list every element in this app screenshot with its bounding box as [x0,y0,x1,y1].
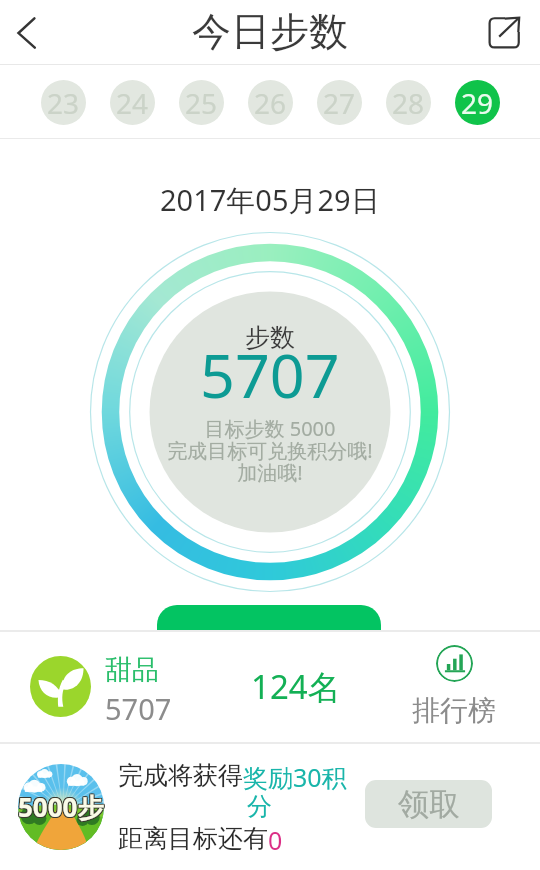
staticText: 距离目标还有 [118,823,268,854]
staticText: 步数 [245,322,295,353]
button[interactable]: 排行榜 [404,645,504,728]
button[interactable]: 23 [41,80,86,125]
button[interactable]: 28 [386,80,431,125]
staticText: 24 [116,84,149,122]
button[interactable]: 25 [179,80,224,125]
staticText: 甜品 [105,653,159,687]
staticText: 5000步 [19,789,105,825]
staticText: 奖励30积 [243,760,347,794]
button[interactable]: Share [478,6,532,60]
staticText: 5707 [200,333,340,416]
staticText: 5000步 [18,789,104,825]
staticText: 23 [47,84,80,122]
staticText: 5000步 [19,790,105,826]
staticText: 0 [268,823,283,857]
button[interactable] [30,656,91,717]
staticText: 2017年05月29日 [160,180,380,220]
staticText: 29 [461,84,494,122]
staticText: 5000步 [19,788,105,824]
staticText: 5000步 [17,788,103,824]
staticText: 25 [185,84,218,122]
staticText: 分 [247,791,272,822]
button[interactable]: 29 [455,80,500,125]
button[interactable]: 26 [248,80,293,125]
staticText: 目标步数 5000 完成目标可兑换积分哦! 加油哦! [167,415,373,486]
button[interactable]: 27 [317,80,362,125]
staticText: 今日步数 [192,7,348,56]
button[interactable] [157,605,381,661]
button[interactable]: Back [0,6,54,60]
button[interactable]: 24 [110,80,155,125]
button[interactable]: 领取 [365,780,492,828]
staticText: 5000步 [17,790,103,826]
staticText: 领取 [398,785,460,824]
staticText: 5000步 [18,790,104,826]
staticText: 26 [254,84,287,122]
staticText: 5000步 [17,789,103,825]
staticText: 5000步 [18,788,104,824]
staticText: 28 [392,84,425,122]
staticText: 完成将获得 [118,760,243,791]
staticText: 5707 [105,689,172,728]
staticText: 124名 [251,664,341,709]
staticText: 排行榜 [412,693,496,728]
staticText: 27 [323,84,356,122]
